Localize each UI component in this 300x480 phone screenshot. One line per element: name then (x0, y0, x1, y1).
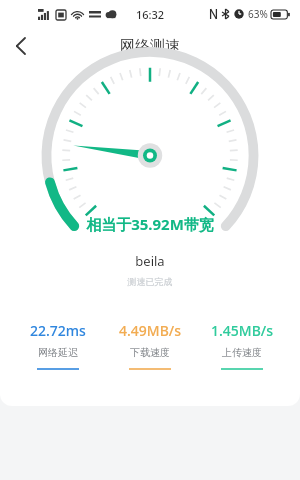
staticText: 网络测速 (120, 37, 180, 56)
staticText: 1.45MB/s (211, 321, 274, 340)
staticText: 4.49MB/s (119, 321, 182, 340)
staticText: 22.72ms (30, 321, 86, 340)
button[interactable]: 1.45MB/s (196, 319, 288, 372)
staticText: 上传速度 (222, 346, 262, 359)
button[interactable]: 4.49MB/s (104, 319, 196, 372)
staticText: 网络延迟 (38, 346, 78, 359)
staticText: beila (0, 252, 300, 270)
staticText: 下载速度 (130, 346, 170, 359)
staticText: 相当于35.92M带宽 (0, 214, 300, 234)
staticText: 16:32 (136, 7, 165, 22)
button[interactable]: Back (0, 28, 40, 64)
button[interactable]: 22.72ms (12, 319, 104, 372)
staticText: 测速已完成 (0, 276, 300, 287)
staticText: 63% (248, 7, 268, 21)
